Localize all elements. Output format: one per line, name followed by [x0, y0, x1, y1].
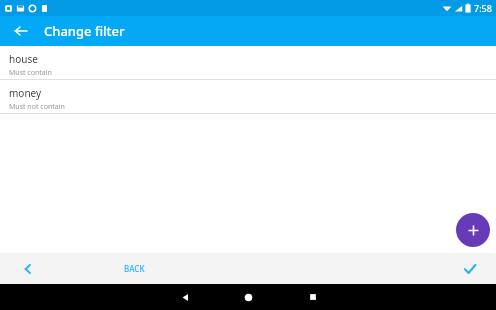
staticText: Must contain	[9, 68, 52, 78]
button[interactable]: Recent apps	[301, 285, 325, 309]
staticText: house	[9, 52, 38, 66]
staticText: Change filter	[44, 22, 125, 40]
button[interactable]: BACK	[118, 259, 151, 278]
button[interactable]: Home	[236, 285, 260, 309]
staticText: Must not contain	[9, 102, 65, 112]
button[interactable]: Back	[10, 20, 32, 42]
staticText: BACK	[124, 263, 145, 274]
button[interactable]: Confirm	[458, 257, 482, 281]
button[interactable]: money	[0, 80, 496, 113]
button[interactable]: Back	[173, 285, 197, 309]
button[interactable]: Add filter	[456, 213, 490, 247]
button[interactable]: Previous	[16, 257, 40, 281]
button[interactable]: house	[0, 46, 496, 79]
staticText: money	[9, 86, 42, 100]
staticText: 7:58	[474, 2, 492, 14]
